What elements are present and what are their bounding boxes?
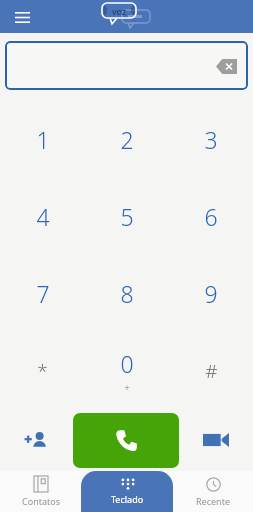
button[interactable]: 1	[0, 100, 85, 178]
staticText: VOZ	[112, 8, 126, 18]
button[interactable]: 7	[0, 255, 85, 332]
button[interactable]: Add contact	[0, 409, 73, 471]
button[interactable]: Menu	[8, 3, 36, 31]
staticText: +	[124, 381, 130, 393]
staticText: 5	[120, 201, 134, 232]
staticText: 9	[204, 278, 218, 309]
staticText: 1	[36, 124, 50, 155]
staticText: #	[205, 358, 218, 384]
button[interactable]: 2	[85, 100, 169, 178]
button[interactable]: Recente	[173, 471, 253, 512]
button[interactable]: Contatos	[0, 471, 81, 512]
button[interactable]: Teclado	[81, 471, 173, 512]
button[interactable]: #	[169, 332, 253, 409]
staticText: 4	[36, 201, 50, 232]
button[interactable]: 5	[85, 178, 169, 255]
staticText: 6	[204, 201, 218, 232]
button[interactable]: Backspace	[213, 53, 239, 79]
button[interactable]: 0	[85, 332, 169, 409]
button[interactable]: Video call	[179, 409, 253, 471]
staticText: Contatos	[22, 495, 60, 507]
button[interactable]: *	[0, 332, 85, 409]
button[interactable]: 8	[85, 255, 169, 332]
staticText: 3	[204, 124, 218, 155]
button[interactable]: 9	[169, 255, 253, 332]
button[interactable]: 6	[169, 178, 253, 255]
staticText: *	[37, 358, 48, 384]
button[interactable]: Backspace	[5, 41, 248, 90]
button[interactable]: 4	[0, 178, 85, 255]
staticText: 7	[36, 278, 50, 309]
staticText: Recente	[196, 495, 230, 507]
button[interactable]: Call	[73, 413, 179, 468]
staticText: 0	[120, 348, 134, 379]
staticText: 8	[120, 278, 134, 309]
button[interactable]: 3	[169, 100, 253, 178]
staticText: Teclado	[111, 493, 144, 505]
staticText: 2	[120, 124, 134, 155]
